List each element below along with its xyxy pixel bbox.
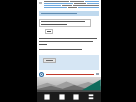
button[interactable]: Tabs <box>86 92 96 102</box>
button[interactable] <box>43 58 56 63</box>
button[interactable]: Back <box>42 92 52 102</box>
button[interactable]: Ad info <box>37 71 101 92</box>
button[interactable]: Recent apps <box>71 92 81 102</box>
button[interactable]: Home <box>57 92 67 102</box>
